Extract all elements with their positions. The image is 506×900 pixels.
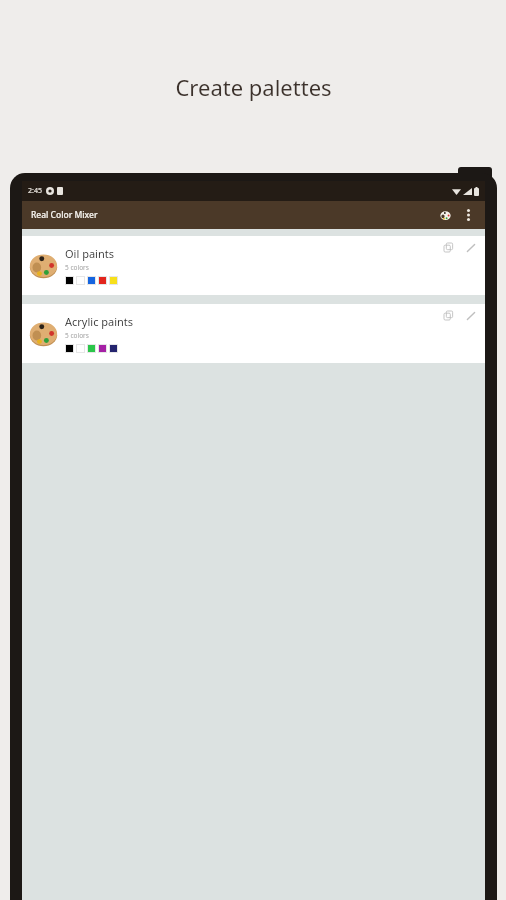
button[interactable]: Duplicate palette [440, 307, 457, 324]
staticText: Real Color Mixer [31, 209, 98, 221]
button[interactable]: Acrylic paints [22, 304, 485, 363]
staticText: Acrylic paints [65, 314, 134, 329]
button[interactable]: Oil paints [22, 236, 485, 295]
button[interactable]: Edit palette [462, 307, 479, 324]
staticText: Oil paints [65, 246, 114, 261]
button[interactable]: More options [458, 205, 478, 225]
staticText: 5 colors [65, 331, 89, 340]
button[interactable]: Duplicate palette [440, 239, 457, 256]
button[interactable]: Edit palette [462, 239, 479, 256]
staticText: Create palettes [175, 72, 332, 102]
staticText: 5 colors [65, 263, 89, 272]
staticText: 2:45 [28, 186, 42, 196]
button[interactable]: Color mixer [435, 205, 455, 225]
